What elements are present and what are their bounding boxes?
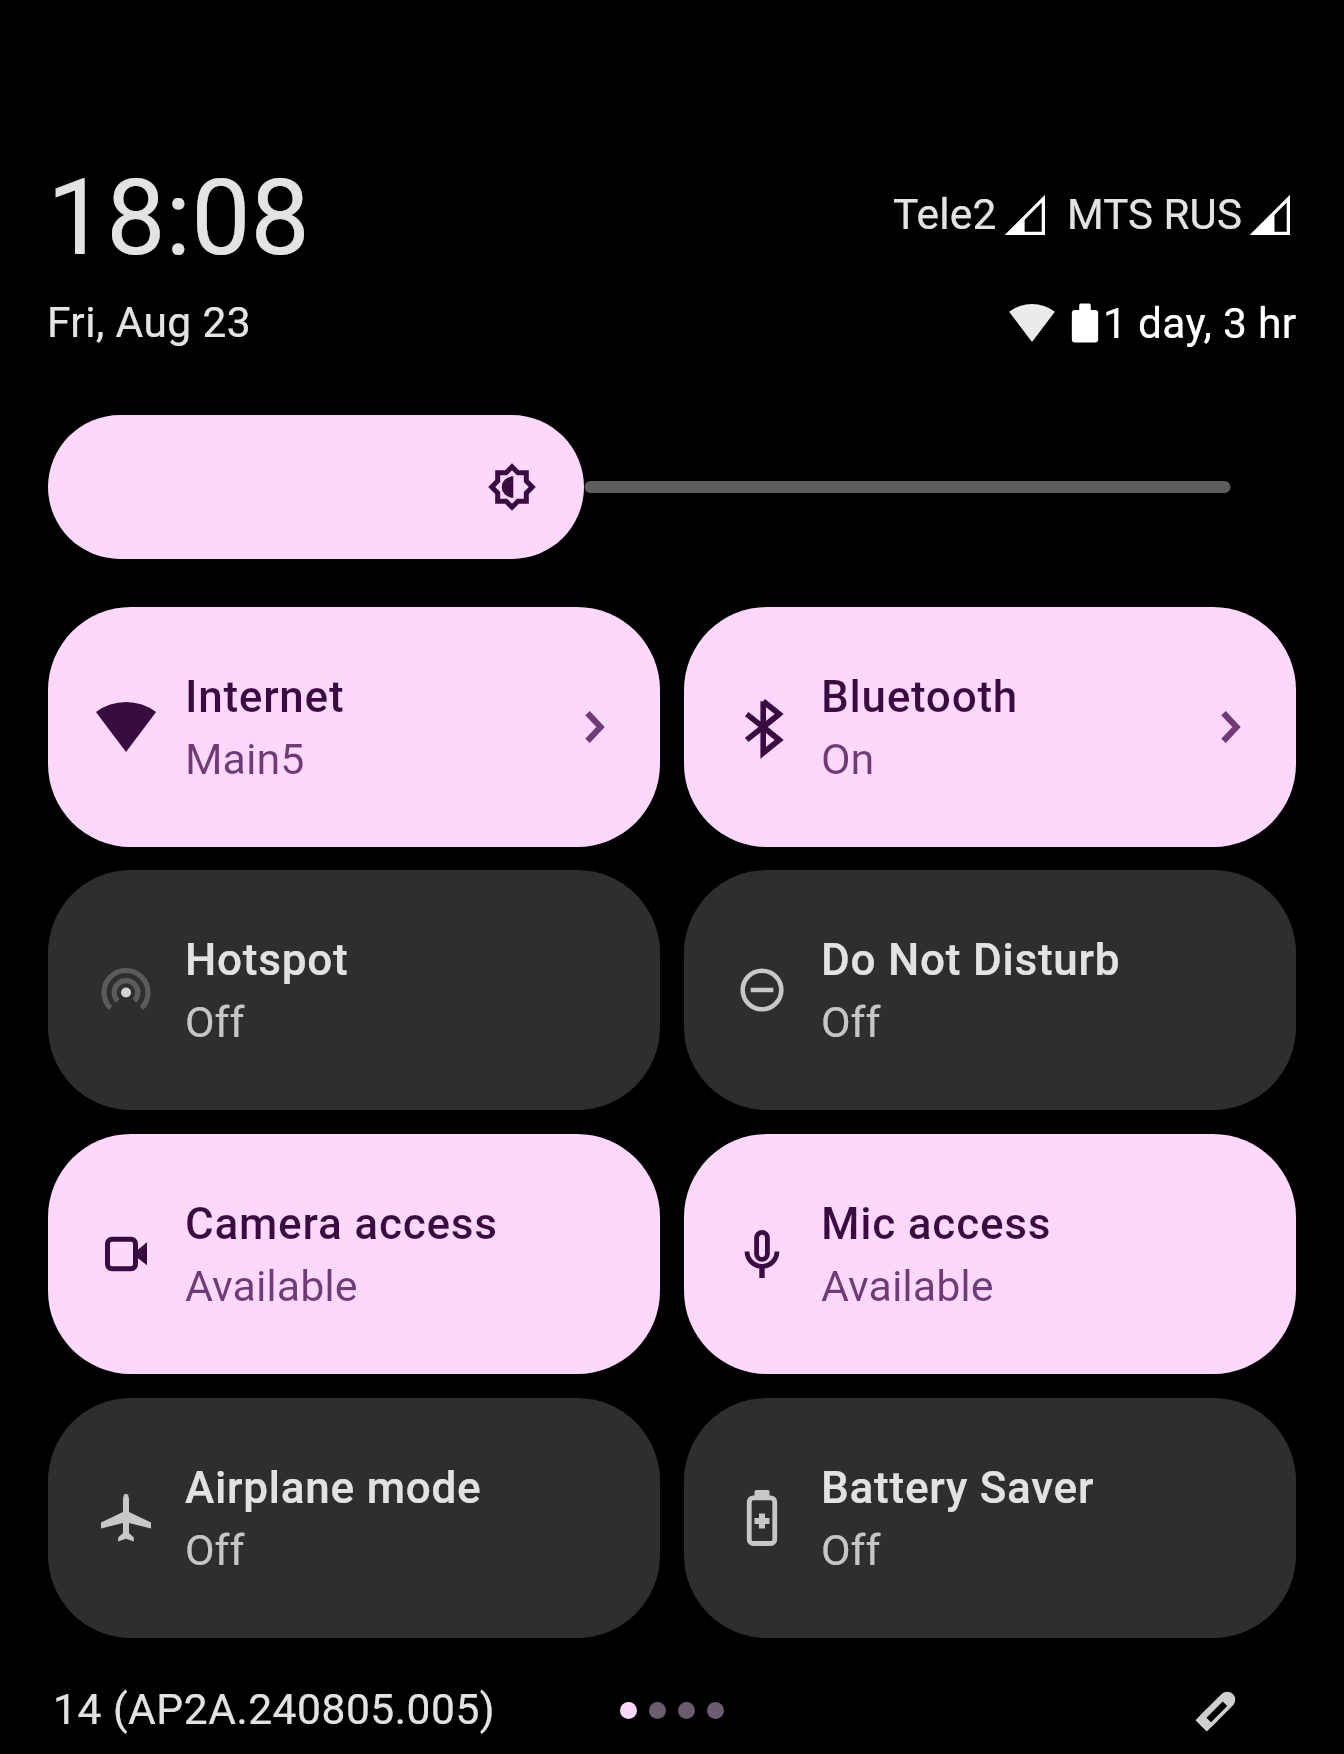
staticText: Main5: [185, 734, 305, 784]
staticText: Bluetooth: [821, 671, 1019, 723]
staticText: Mic access: [821, 1198, 1052, 1250]
button[interactable]: Camera access: [48, 1134, 660, 1374]
staticText: Available: [821, 1261, 994, 1311]
staticText: Off: [821, 1525, 881, 1575]
staticText: 18:08: [47, 156, 310, 280]
staticText: On: [821, 734, 875, 784]
staticText: 1 day, 3 hr: [1103, 299, 1297, 349]
staticText: Available: [185, 1261, 358, 1311]
button[interactable]: Internet: [48, 607, 660, 847]
staticText: Do Not Disturb: [821, 934, 1121, 986]
button[interactable]: Brightness: [48, 415, 1296, 559]
button[interactable]: Airplane mode: [48, 1398, 660, 1638]
staticText: Airplane mode: [185, 1462, 482, 1514]
staticText: Off: [185, 997, 245, 1047]
staticText: Off: [185, 1525, 245, 1575]
staticText: Fri, Aug 23: [47, 298, 252, 348]
button[interactable]: Mic access: [684, 1134, 1296, 1374]
staticText: Camera access: [185, 1198, 498, 1250]
staticText: Internet: [185, 671, 345, 723]
button[interactable]: Do Not Disturb: [684, 870, 1296, 1110]
staticText: MTS RUS: [1067, 190, 1242, 239]
staticText: Tele2: [893, 190, 997, 240]
button[interactable]: Bluetooth: [684, 607, 1296, 847]
staticText: Hotspot: [185, 934, 349, 986]
button[interactable]: Battery Saver: [684, 1398, 1296, 1638]
staticText: 14 (AP2A.240805.005): [53, 1685, 496, 1735]
staticText: Battery Saver: [821, 1462, 1095, 1514]
staticText: Off: [821, 997, 881, 1047]
button[interactable]: Hotspot: [48, 870, 660, 1110]
button[interactable]: Edit tiles: [1177, 1670, 1257, 1750]
